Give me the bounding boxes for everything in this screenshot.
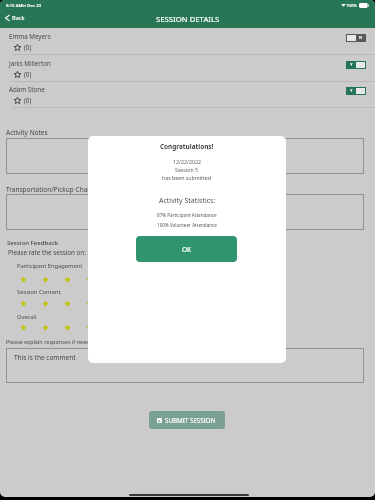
staticText: Janis Millerton (9, 59, 51, 68)
staticText: (0) (24, 43, 32, 52)
staticText: Fri Dec 23 (21, 2, 42, 8)
button[interactable]: Janis Millerton (0, 55, 375, 82)
staticText: Emma Meyers (9, 32, 51, 41)
staticText: Adam Stone (9, 85, 45, 94)
staticText: has been submitted (162, 174, 212, 181)
button[interactable]: Back (3, 13, 27, 23)
staticText: N (359, 35, 363, 41)
staticText: 12/22/2022 (173, 158, 201, 165)
staticText: Y (350, 88, 353, 94)
button[interactable]: Submit session (149, 411, 225, 429)
staticText: 100% (346, 2, 358, 8)
staticText: Session Content (17, 288, 61, 296)
staticText: Overall (17, 313, 37, 321)
staticText: Transportation/Pickup Changes (6, 185, 103, 194)
other: Submit session (157, 418, 162, 423)
staticText: 8:13 AM (6, 2, 23, 8)
staticText: OK (182, 245, 192, 254)
staticText: 100% Volunteer Attendance (157, 222, 217, 228)
other: Back (5, 15, 10, 21)
staticText: 87% Participant Attendance (157, 212, 217, 218)
button[interactable]: OK (136, 236, 237, 262)
staticText: Please rate the session on: (8, 248, 86, 257)
button[interactable]: Attended yes (346, 61, 366, 69)
button[interactable]: Attended yes (346, 87, 366, 95)
staticText: Session 5 (175, 166, 199, 173)
staticText: Y (350, 62, 353, 68)
staticText: SESSION DETAILS (156, 14, 220, 25)
staticText: Please explain responses if needed: (6, 338, 98, 345)
staticText: (0) (24, 70, 32, 79)
staticText: Session Feedback (7, 238, 59, 246)
button[interactable]: Emma Meyers (0, 28, 375, 55)
staticText: Congratulations! (160, 142, 214, 151)
staticText: SUBMIT SESSION (165, 416, 216, 425)
button[interactable]: Adam Stone (0, 81, 375, 108)
staticText: Back (12, 14, 25, 22)
button[interactable]: Attended no (346, 34, 366, 42)
staticText: Activity Notes (6, 128, 48, 137)
staticText: Activity Statistics: (159, 196, 216, 206)
staticText: (0) (24, 96, 32, 105)
staticText: Participant Engagement (17, 262, 83, 270)
staticText: This is the comment (14, 353, 76, 362)
